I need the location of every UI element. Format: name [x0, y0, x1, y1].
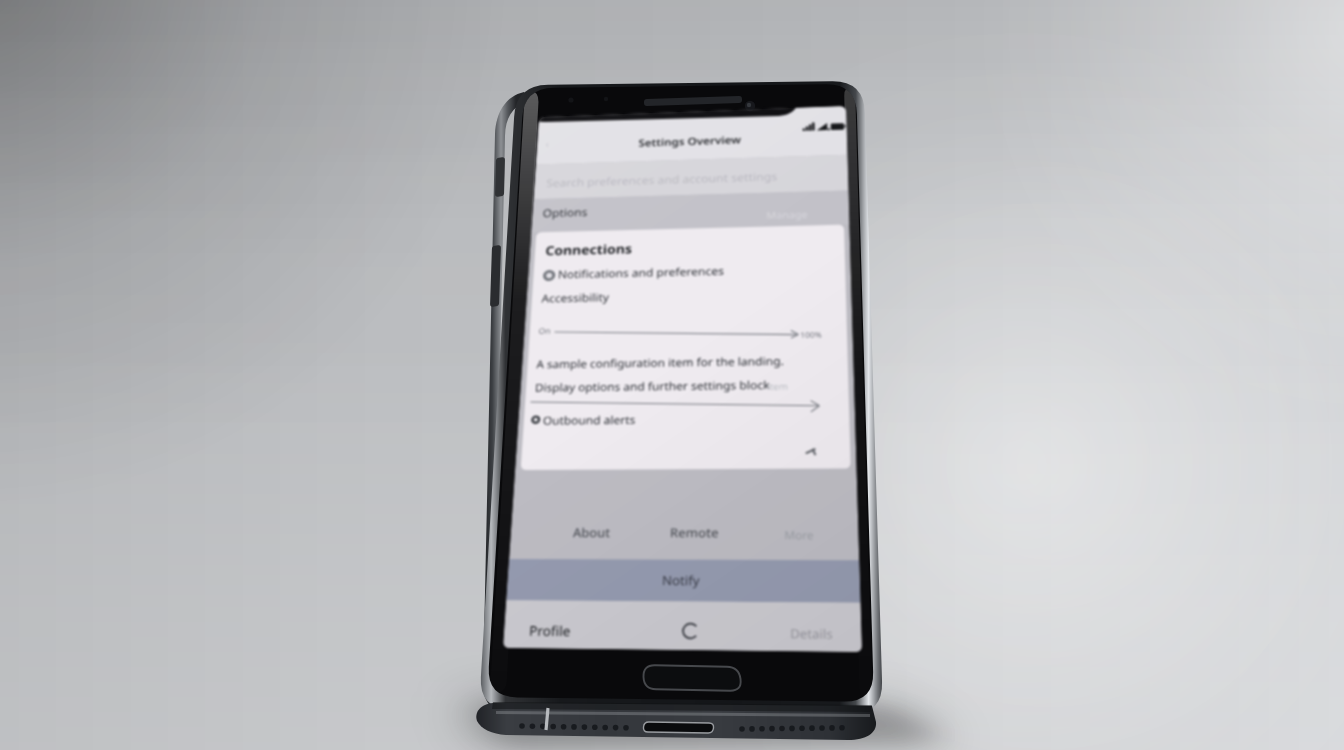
button[interactable] — [518, 270, 866, 300]
button[interactable]: Back — [530, 112, 560, 148]
button[interactable] — [504, 604, 624, 648]
button[interactable]: Refresh — [624, 606, 744, 650]
button[interactable] — [516, 300, 864, 330]
button[interactable] — [622, 512, 732, 548]
button[interactable] — [512, 510, 622, 546]
button[interactable] — [524, 196, 864, 230]
button[interactable] — [744, 608, 864, 652]
button[interactable] — [506, 560, 864, 600]
